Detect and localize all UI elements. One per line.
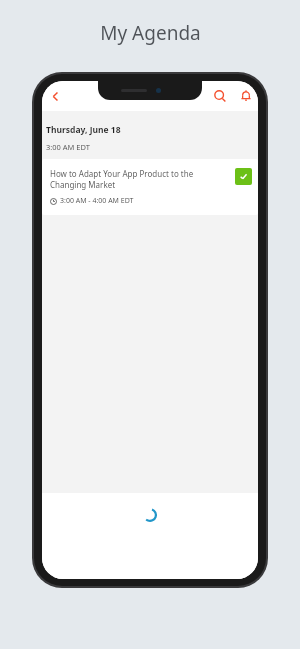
- button[interactable]: Added to agenda: [235, 168, 252, 185]
- staticText: 3:00 AM - 4:00 AM EDT: [60, 196, 134, 206]
- staticText: My Agenda: [100, 20, 201, 46]
- other: Loading: [143, 508, 157, 522]
- staticText: 3:00 AM EDT: [46, 142, 90, 152]
- button[interactable]: Back: [42, 83, 68, 109]
- staticText: Thursday, June 18: [46, 124, 121, 136]
- button[interactable]: How to Adapt Your App Product to the Cha…: [42, 159, 258, 215]
- button[interactable]: Notifications: [234, 84, 258, 108]
- button[interactable]: Search: [208, 84, 232, 108]
- staticText: How to Adapt Your App Product to the Cha…: [50, 168, 229, 190]
